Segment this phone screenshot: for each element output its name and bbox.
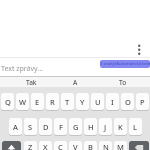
staticText: U [95, 97, 101, 107]
button[interactable]: Text zprávy… [0, 63, 96, 75]
button[interactable]: K [114, 118, 127, 135]
staticText: T [65, 97, 70, 107]
staticText: G [73, 122, 79, 132]
staticText: F [59, 122, 63, 132]
button[interactable]: O [121, 93, 134, 110]
staticText: Q [5, 97, 11, 107]
button[interactable]: Tak [6, 77, 56, 87]
staticText: E [35, 97, 40, 107]
staticText: To [119, 78, 127, 87]
button[interactable]: I [106, 93, 119, 110]
button[interactable]: W [16, 93, 29, 110]
button[interactable] [2, 141, 21, 150]
staticText: A [73, 78, 78, 87]
button[interactable]: M [114, 141, 127, 150]
staticText: K [118, 122, 123, 132]
button[interactable]: J [99, 118, 112, 135]
staticText: A [13, 122, 18, 132]
button[interactable]: To [98, 77, 148, 87]
button[interactable]: L [129, 118, 142, 135]
staticText: Text zprávy… [1, 64, 43, 74]
staticText: W [19, 97, 27, 107]
button[interactable]: P [136, 93, 149, 110]
button[interactable]: Z [24, 141, 37, 150]
staticText: M [117, 142, 124, 150]
button[interactable]: X [39, 141, 52, 150]
staticText: I [111, 97, 114, 107]
staticText: R [50, 97, 55, 107]
button[interactable] [131, 38, 147, 58]
button[interactable]: T [61, 93, 74, 110]
button[interactable]: G [69, 118, 82, 135]
staticText: 3 znaky/Automatická brána [100, 61, 150, 67]
button[interactable] [129, 141, 149, 150]
button[interactable]: D [39, 118, 52, 135]
staticText: S [28, 122, 33, 132]
staticText: C [58, 142, 63, 150]
button[interactable]: Q [1, 93, 14, 110]
staticText: X [43, 142, 48, 150]
button[interactable]: S [24, 118, 37, 135]
button[interactable]: F [54, 118, 67, 135]
button[interactable]: A [9, 118, 22, 135]
button[interactable]: B [84, 141, 97, 150]
button[interactable]: A [50, 77, 100, 87]
button[interactable]: R [46, 93, 59, 110]
staticText: Y [80, 97, 85, 107]
staticText: L [133, 122, 138, 132]
button[interactable]: Y [76, 93, 89, 110]
staticText: B [88, 142, 93, 150]
button[interactable]: U [91, 93, 104, 110]
staticText: P [140, 97, 145, 107]
button[interactable]: C [54, 141, 67, 150]
staticText: J [104, 122, 107, 132]
staticText: D [43, 122, 49, 132]
button[interactable]: H [84, 118, 97, 135]
button[interactable]: V [69, 141, 82, 150]
staticText: H [88, 122, 94, 132]
staticText: Tak [26, 78, 37, 87]
button[interactable]: N [99, 141, 112, 150]
button[interactable]: E [31, 93, 44, 110]
staticText: V [73, 142, 78, 150]
staticText: N [103, 142, 109, 150]
staticText: O [125, 97, 131, 107]
staticText: Z [28, 142, 33, 150]
